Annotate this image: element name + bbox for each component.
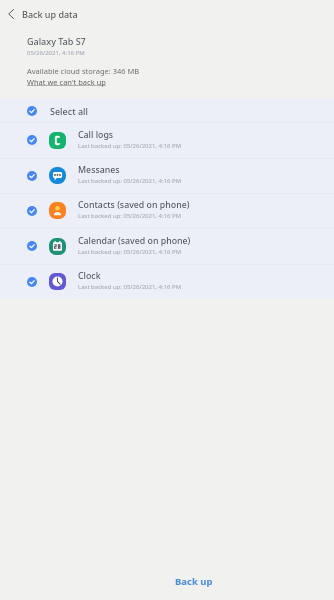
button[interactable]: Back — [0, 0, 21, 27]
button[interactable]: Calendar (saved on phone) — [0, 228, 334, 264]
button[interactable]: Back up — [175, 572, 213, 590]
staticText: Back up data — [22, 8, 78, 20]
staticText: Last backed up: 05/26/2021, 4:16 PM — [78, 248, 182, 256]
staticText: Calendar (saved on phone) — [78, 235, 191, 247]
button[interactable]: Messanes — [0, 158, 334, 193]
staticText: 05/26/2021, 4:16 PM — [27, 49, 85, 57]
staticText: Galaxy Tab S7 — [27, 35, 86, 47]
button[interactable]: Call logs — [0, 122, 334, 158]
staticText: Back up — [175, 575, 213, 588]
staticText: Last backed up: 05/26/2021, 4:16 PM — [78, 177, 182, 185]
staticText: Last backed up: 05/26/2021, 4:16 PM — [78, 212, 182, 220]
staticText: Call logs — [78, 129, 114, 141]
staticText: Clock — [78, 270, 101, 282]
button[interactable]: Clock — [0, 264, 334, 299]
staticText: Last backed up: 05/26/2021, 4:16 PM — [78, 283, 182, 291]
staticText: Contacts (saved on phone) — [78, 199, 190, 211]
staticText: Available cloud storage: 346 MB — [27, 66, 140, 76]
staticText: Select all — [50, 105, 88, 117]
button[interactable]: What we can't back up — [27, 77, 106, 87]
staticText: Messanes — [78, 164, 120, 176]
button[interactable]: Select all — [0, 99, 334, 122]
staticText: Last backed up: 05/26/2021, 4:16 PM — [78, 142, 182, 150]
button[interactable]: Contacts (saved on phone) — [0, 193, 334, 228]
